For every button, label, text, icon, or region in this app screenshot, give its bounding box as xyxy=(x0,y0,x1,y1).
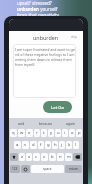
button[interactable]: m xyxy=(65,153,72,161)
staticText: t xyxy=(43,130,45,136)
staticText: I am super frustrated and want to get ri… xyxy=(15,47,76,67)
button[interactable]: t xyxy=(41,129,47,137)
staticText: h xyxy=(54,142,57,148)
button[interactable]: and xyxy=(9,118,33,129)
staticText: r xyxy=(36,130,38,136)
button[interactable]: n xyxy=(57,153,64,161)
button[interactable]: z xyxy=(19,153,25,161)
staticText: unburden xyxy=(17,6,39,12)
staticText: and xyxy=(18,121,25,126)
staticText: e xyxy=(28,130,31,136)
staticText: space xyxy=(43,167,52,171)
staticText: n xyxy=(59,154,62,160)
button[interactable]: return xyxy=(65,165,82,173)
staticText: w xyxy=(20,130,24,136)
button[interactable]: Emoji xyxy=(21,165,30,173)
staticText: f xyxy=(40,142,42,148)
button[interactable]: s xyxy=(22,141,29,149)
button[interactable]: j xyxy=(59,141,65,149)
staticText: k xyxy=(68,142,71,148)
button[interactable]: k xyxy=(66,141,72,149)
button[interactable]: a xyxy=(14,141,21,149)
staticText: yourself xyxy=(39,6,58,12)
button[interactable]: q xyxy=(10,129,17,137)
button[interactable]: r xyxy=(34,129,40,137)
button[interactable]: again xyxy=(58,118,83,129)
staticText: q xyxy=(12,130,15,136)
staticText: Let Go xyxy=(51,104,65,110)
staticText: skip xyxy=(71,35,78,39)
staticText: p xyxy=(78,130,81,136)
button[interactable]: o xyxy=(69,129,75,137)
staticText: o xyxy=(71,130,74,136)
button[interactable]: because xyxy=(33,118,58,129)
staticText: y xyxy=(50,130,53,136)
button[interactable]: unburden xyxy=(9,31,83,43)
staticText: g xyxy=(47,142,50,148)
staticText: m xyxy=(67,154,71,160)
staticText: x xyxy=(28,154,31,160)
staticText: 123 xyxy=(12,167,18,171)
button[interactable]: 123 xyxy=(10,165,20,173)
button[interactable]: space xyxy=(31,165,64,173)
button[interactable]: x xyxy=(26,153,32,161)
staticText: a xyxy=(16,142,19,148)
button[interactable]: u xyxy=(55,129,61,137)
button[interactable]: p xyxy=(76,129,82,137)
button[interactable]: l xyxy=(73,141,79,149)
staticText: from that negativity xyxy=(17,12,59,18)
button[interactable]: i xyxy=(62,129,68,137)
staticText: because xyxy=(39,121,53,126)
staticText: s xyxy=(24,142,27,148)
staticText: c xyxy=(35,154,38,160)
staticText: j xyxy=(61,142,63,148)
button[interactable]: d xyxy=(30,141,37,149)
button[interactable]: g xyxy=(45,141,51,149)
staticText: i xyxy=(64,130,66,136)
staticText: upset? stressed? xyxy=(17,0,52,6)
staticText: d xyxy=(32,142,35,148)
staticText: u xyxy=(57,130,60,136)
button[interactable]: Shift xyxy=(10,153,18,161)
button[interactable]: I am super frustrated and want to get ri… xyxy=(13,44,76,98)
staticText: z xyxy=(21,154,23,160)
button[interactable]: v xyxy=(41,153,48,161)
staticText: return xyxy=(69,167,78,171)
staticText: l xyxy=(75,142,77,148)
button[interactable]: y xyxy=(48,129,54,137)
staticText: unburden xyxy=(33,34,59,41)
staticText: b xyxy=(51,154,54,160)
button[interactable]: Let Go xyxy=(43,101,72,113)
staticText: again xyxy=(66,121,75,126)
button[interactable]: w xyxy=(18,129,25,137)
button[interactable]: b xyxy=(49,153,56,161)
button[interactable]: f xyxy=(38,141,44,149)
staticText: v xyxy=(43,154,46,160)
button[interactable]: h xyxy=(52,141,58,149)
button[interactable]: e xyxy=(26,129,33,137)
button[interactable]: Backspace xyxy=(73,153,82,161)
button[interactable]: c xyxy=(33,153,40,161)
